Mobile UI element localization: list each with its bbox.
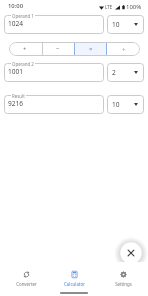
button[interactable]: Settings: [100, 271, 146, 287]
button[interactable]: ×: [74, 42, 107, 56]
staticText: Operand 1: [12, 13, 34, 19]
staticText: ×: [89, 45, 93, 53]
button[interactable]: ÷: [107, 42, 140, 56]
button[interactable]: 10: [107, 15, 144, 34]
staticText: Settings: [115, 281, 132, 287]
staticText: Operand 2: [12, 61, 34, 67]
staticText: Calculator: [64, 281, 85, 287]
other: Open dropdown: [134, 23, 138, 26]
other: Open dropdown: [134, 103, 138, 106]
button[interactable]: Clear: [116, 238, 146, 268]
button[interactable]: −: [41, 42, 74, 56]
staticText: 100%: [126, 3, 142, 11]
staticText: −: [56, 45, 60, 53]
staticText: ÷: [122, 45, 126, 53]
staticText: LTE: [105, 4, 113, 10]
button[interactable]: 1024: [4, 15, 104, 34]
staticText: 1024: [8, 19, 24, 28]
other: Open dropdown: [134, 71, 138, 74]
staticText: Converter: [16, 281, 37, 287]
button[interactable]: 2: [107, 63, 144, 82]
staticText: 2: [112, 68, 116, 77]
staticText: +: [23, 45, 27, 53]
button[interactable]: Converter: [3, 271, 49, 287]
staticText: 10: [112, 20, 120, 29]
staticText: 9216: [8, 99, 24, 108]
staticText: Result: [12, 93, 25, 99]
button[interactable]: +: [9, 42, 41, 56]
staticText: 10: [112, 100, 120, 109]
staticText: 10:00: [8, 2, 24, 10]
button[interactable]: 1001: [4, 63, 104, 82]
button[interactable]: 10: [107, 95, 144, 114]
button[interactable]: 9216: [4, 95, 104, 114]
button[interactable]: Calculator: [51, 271, 97, 287]
staticText: 1001: [8, 67, 24, 76]
